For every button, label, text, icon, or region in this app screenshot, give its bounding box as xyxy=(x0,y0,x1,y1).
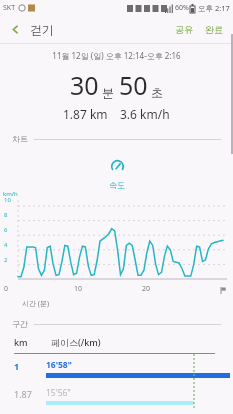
staticText: 30 xyxy=(70,68,99,102)
button[interactable]: Speed xyxy=(105,154,129,178)
staticText: 15'56" xyxy=(46,387,71,399)
staticText: 2 xyxy=(4,256,8,264)
staticText: 1 xyxy=(14,360,20,372)
staticText: 50 xyxy=(119,68,148,102)
staticText: 6 xyxy=(4,226,8,234)
staticText: 시간 (분) xyxy=(22,299,50,309)
staticText: 16'58" xyxy=(46,359,72,371)
button[interactable]: 1.87 xyxy=(0,382,233,410)
button[interactable]: 완료 xyxy=(200,19,233,40)
staticText: 1.87 km xyxy=(63,106,108,122)
staticText: 11월 12일 (일) 오후 12:14-오후 2:16 xyxy=(52,50,181,61)
button[interactable]: 1 xyxy=(0,354,233,382)
staticText: 걷기 xyxy=(30,22,54,37)
staticText: 20 xyxy=(142,284,151,294)
staticText: 0 xyxy=(4,284,9,294)
staticText: km/h xyxy=(3,190,18,198)
staticText: 1.87 xyxy=(14,388,32,400)
staticText: 공유 xyxy=(175,24,193,35)
staticText: km xyxy=(14,336,28,348)
staticText: 오후 2:17 xyxy=(198,3,230,13)
staticText: 구간 xyxy=(12,319,28,329)
staticText: 초 xyxy=(151,85,163,100)
staticText: 60% xyxy=(175,3,189,13)
staticText: 차트 xyxy=(12,134,28,144)
staticText: 페이스(/km) xyxy=(51,336,101,348)
staticText: 10 xyxy=(74,284,83,294)
staticText: 10 xyxy=(4,196,11,204)
staticText: 4 xyxy=(4,241,8,249)
staticText: 분 xyxy=(102,85,114,100)
staticText: SKT xyxy=(3,3,16,13)
staticText: 8 xyxy=(4,211,8,219)
staticText: 완료 xyxy=(205,24,223,35)
staticText: 3.6 km/h xyxy=(120,106,170,122)
staticText: 속도 xyxy=(109,180,125,190)
button[interactable]: 공유 xyxy=(168,19,200,40)
button[interactable]: Back xyxy=(0,16,30,42)
